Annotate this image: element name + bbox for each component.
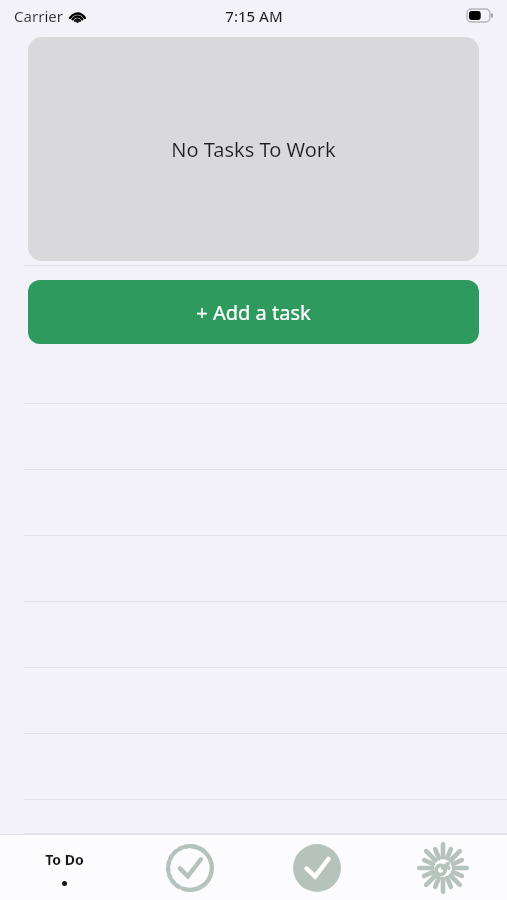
button[interactable]: + Add a task <box>28 280 479 344</box>
button[interactable]: No Tasks To Work <box>28 37 479 261</box>
staticText: No Tasks To Work <box>171 136 336 163</box>
button[interactable] <box>0 338 507 404</box>
button[interactable]: Settings <box>380 835 506 900</box>
button[interactable]: In progress tasks <box>127 835 253 900</box>
staticText: Carrier <box>14 6 63 26</box>
button[interactable]: To Do <box>1 835 127 900</box>
staticText: To Do <box>45 850 84 869</box>
staticText: + Add a task <box>196 299 311 326</box>
button[interactable]: Completed tasks <box>254 835 380 900</box>
staticText: 7:15 AM <box>225 6 283 26</box>
